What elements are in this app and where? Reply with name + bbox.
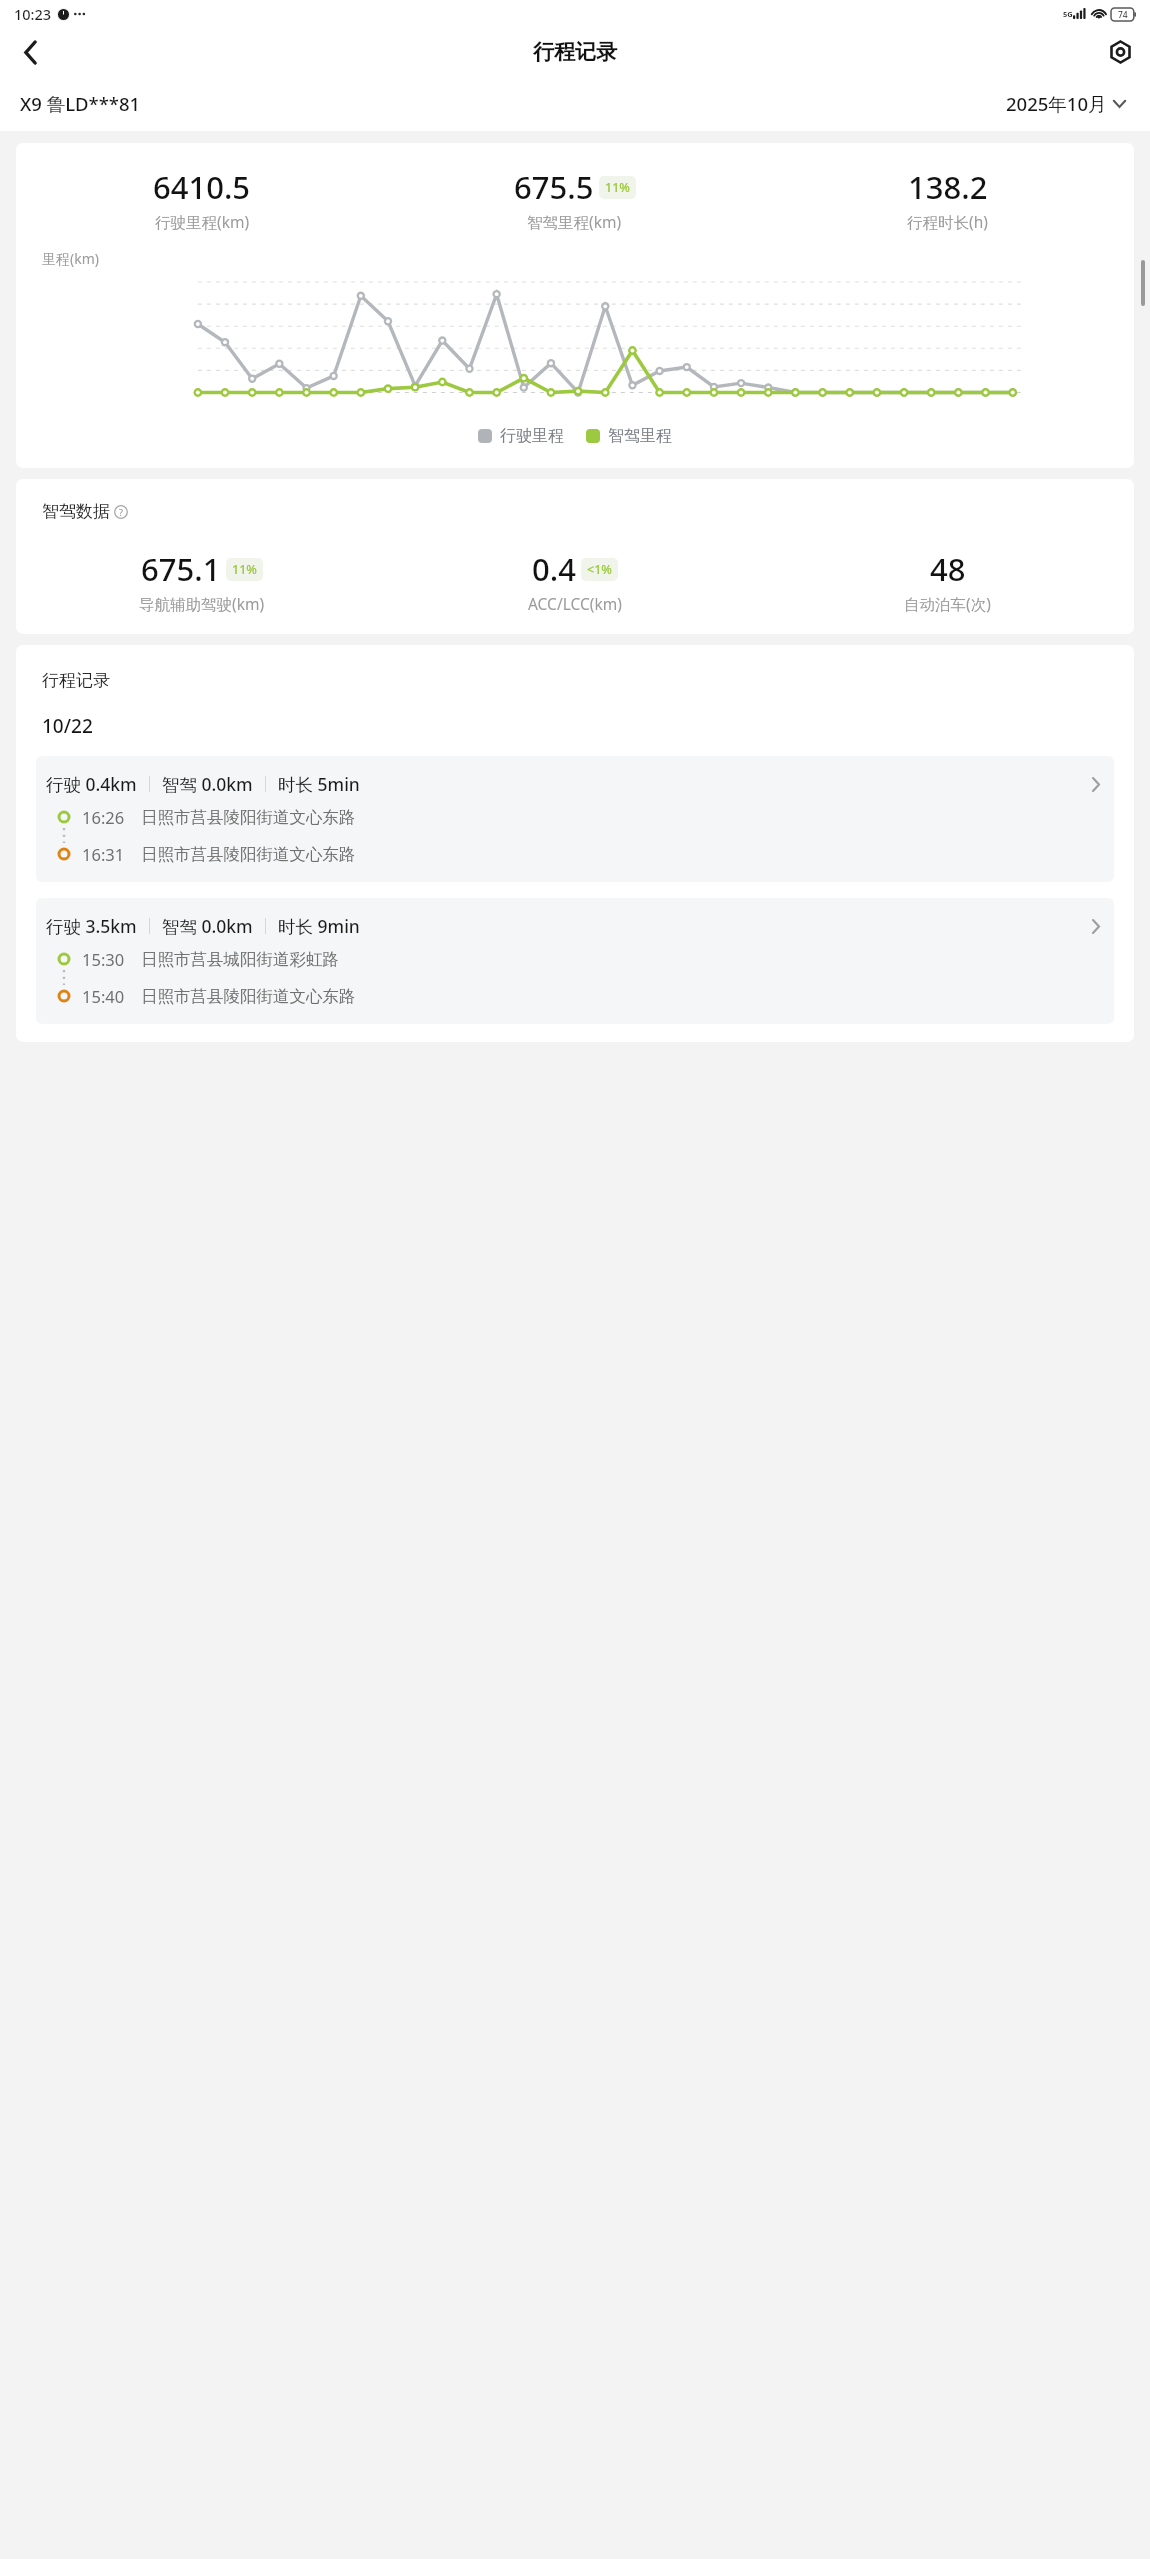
button[interactable]: Help xyxy=(113,504,129,520)
staticText: 10/22 xyxy=(42,713,93,739)
staticText: 自动泊车(次) xyxy=(904,593,991,614)
staticText: ? xyxy=(119,506,123,518)
staticText: 行程记录 xyxy=(42,670,110,691)
staticText: 6410.5 xyxy=(153,166,251,208)
staticText: 智驾里程 xyxy=(608,426,672,446)
staticText: 行程记录 xyxy=(533,39,617,65)
staticText: 智驾数据 xyxy=(42,501,110,522)
staticText: 智驾里程(km) xyxy=(527,211,622,232)
staticText: 11% xyxy=(232,561,257,578)
staticText: 675.5 xyxy=(514,166,594,208)
staticText: 时长 5min xyxy=(278,772,360,796)
button[interactable]: Settings xyxy=(1096,28,1144,76)
staticText: 138.2 xyxy=(908,166,988,208)
staticText: 0.4 xyxy=(532,548,576,590)
staticText: 行程时长(h) xyxy=(907,211,988,232)
button[interactable]: 2025年10月 xyxy=(1002,87,1130,120)
staticText: 行驶里程(km) xyxy=(155,211,250,232)
button[interactable]: 行驶 3.5km xyxy=(36,898,1114,1024)
staticText: 16:31 xyxy=(82,843,125,865)
staticText: 智驾 0.0km xyxy=(162,914,253,938)
staticText: 行驶 0.4km xyxy=(46,772,137,796)
staticText: 行驶里程 xyxy=(500,426,564,446)
staticText: 日照市莒县城阳街道彩虹路 xyxy=(141,949,339,970)
staticText: 16:26 xyxy=(82,806,125,828)
staticText: 10:23 xyxy=(14,4,52,24)
button[interactable]: 行驶 0.4km xyxy=(36,756,1114,882)
staticText: 日照市莒县陵阳街道文心东路 xyxy=(141,986,356,1007)
staticText: <1% xyxy=(587,561,612,578)
staticText: ACC/LCC(km) xyxy=(528,593,622,614)
staticText: 5G xyxy=(1063,9,1073,19)
button[interactable]: Back xyxy=(6,28,54,76)
staticText: 15:40 xyxy=(82,985,125,1007)
staticText: 日照市莒县陵阳街道文心东路 xyxy=(141,807,356,828)
staticText: 行驶 3.5km xyxy=(46,914,137,938)
staticText: 里程(km) xyxy=(42,249,99,268)
staticText: X9 鲁LD***81 xyxy=(20,91,141,116)
staticText: 74 xyxy=(1118,9,1128,21)
staticText: 日照市莒县陵阳街道文心东路 xyxy=(141,844,356,865)
staticText: 2025年10月 xyxy=(1006,91,1107,116)
staticText: 48 xyxy=(930,548,966,590)
staticText: 时长 9min xyxy=(278,914,360,938)
staticText: 11% xyxy=(605,179,630,196)
staticText: 智驾 0.0km xyxy=(162,772,253,796)
staticText: 导航辅助驾驶(km) xyxy=(139,593,265,614)
staticText: 15:30 xyxy=(82,948,125,970)
staticText: 675.1 xyxy=(141,548,221,590)
